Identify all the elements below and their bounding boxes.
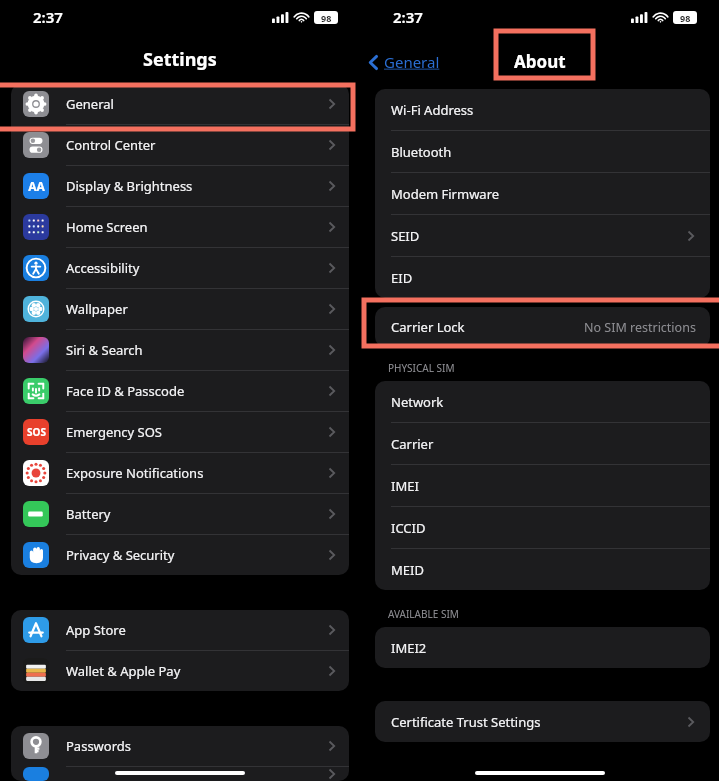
button[interactable]: Siri & Search (11, 330, 349, 371)
button[interactable]: Passwords (11, 726, 349, 767)
button[interactable]: Face ID & Passcode (11, 371, 349, 412)
staticText: AA (28, 178, 45, 194)
button[interactable]: Wallet & Apple Pay (11, 651, 349, 691)
button[interactable]: Home Screen (11, 207, 349, 248)
button[interactable]: App Store (11, 610, 349, 651)
button[interactable]: Accessibility (11, 248, 349, 289)
staticText: EID (391, 269, 413, 287)
staticText: Wi-Fi Address (391, 101, 474, 119)
button[interactable] (11, 767, 349, 781)
staticText: Network (391, 393, 444, 411)
button[interactable]: General (11, 84, 349, 125)
staticText: General (66, 95, 114, 113)
button[interactable]: Exposure Notifications (11, 453, 349, 494)
staticText: Modem Firmware (391, 185, 500, 203)
button[interactable]: Carrier Lock (375, 307, 710, 347)
button[interactable]: SEID (375, 215, 710, 257)
staticText: Carrier Lock (391, 318, 465, 336)
button[interactable]: IMEI (375, 465, 710, 507)
staticText: IMEI (391, 477, 419, 495)
staticText: SOS (27, 425, 46, 439)
staticText: About (514, 50, 566, 73)
staticText: SEID (391, 227, 420, 245)
staticText: 2:37 (33, 7, 63, 27)
staticText: ICCID (391, 519, 426, 537)
button[interactable]: Modem Firmware (375, 173, 710, 215)
staticText: General (384, 52, 440, 72)
staticText: Face ID & Passcode (66, 382, 185, 400)
button[interactable]: ICCID (375, 507, 710, 549)
staticText: Battery (66, 505, 111, 523)
button[interactable]: AA (11, 166, 349, 207)
staticText: No SIM restrictions (584, 319, 696, 336)
staticText: Passwords (66, 737, 132, 755)
staticText: Bluetooth (391, 143, 452, 161)
staticText: Accessibility (66, 259, 140, 277)
button[interactable]: Wallpaper (11, 289, 349, 330)
staticText: Settings (143, 47, 217, 72)
button[interactable]: MEID (375, 549, 710, 590)
staticText: Display & Brightness (66, 177, 193, 195)
button[interactable]: Wi-Fi Address (375, 89, 710, 131)
button[interactable]: Carrier (375, 423, 710, 465)
button[interactable]: EID (375, 257, 710, 298)
staticText: Privacy & Security (66, 546, 175, 564)
staticText: MEID (391, 561, 424, 579)
button[interactable]: Certificate Trust Settings (375, 701, 710, 742)
staticText: PHYSICAL SIM (388, 361, 455, 375)
staticText: AVAILABLE SIM (388, 607, 459, 621)
button[interactable]: General (368, 52, 440, 72)
staticText: Emergency SOS (66, 423, 162, 441)
staticText: IMEI2 (391, 639, 427, 657)
staticText: Home Screen (66, 218, 148, 236)
staticText: Exposure Notifications (66, 464, 204, 482)
staticText: 98 (321, 12, 332, 24)
staticText: App Store (66, 621, 126, 639)
staticText: Wallet & Apple Pay (66, 662, 181, 680)
staticText: 2:37 (393, 7, 423, 27)
button[interactable]: Battery (11, 494, 349, 535)
staticText: Carrier (391, 435, 434, 453)
button[interactable]: Network (375, 381, 710, 423)
staticText: Certificate Trust Settings (391, 713, 541, 731)
staticText: 98 (680, 12, 691, 24)
staticText: Control Center (66, 136, 156, 154)
staticText: Siri & Search (66, 341, 143, 359)
button[interactable]: IMEI2 (375, 627, 710, 668)
button[interactable]: Control Center (11, 125, 349, 166)
staticText: Wallpaper (66, 300, 128, 318)
button[interactable]: Bluetooth (375, 131, 710, 173)
button[interactable]: Privacy & Security (11, 535, 349, 575)
button[interactable]: SOS (11, 412, 349, 453)
